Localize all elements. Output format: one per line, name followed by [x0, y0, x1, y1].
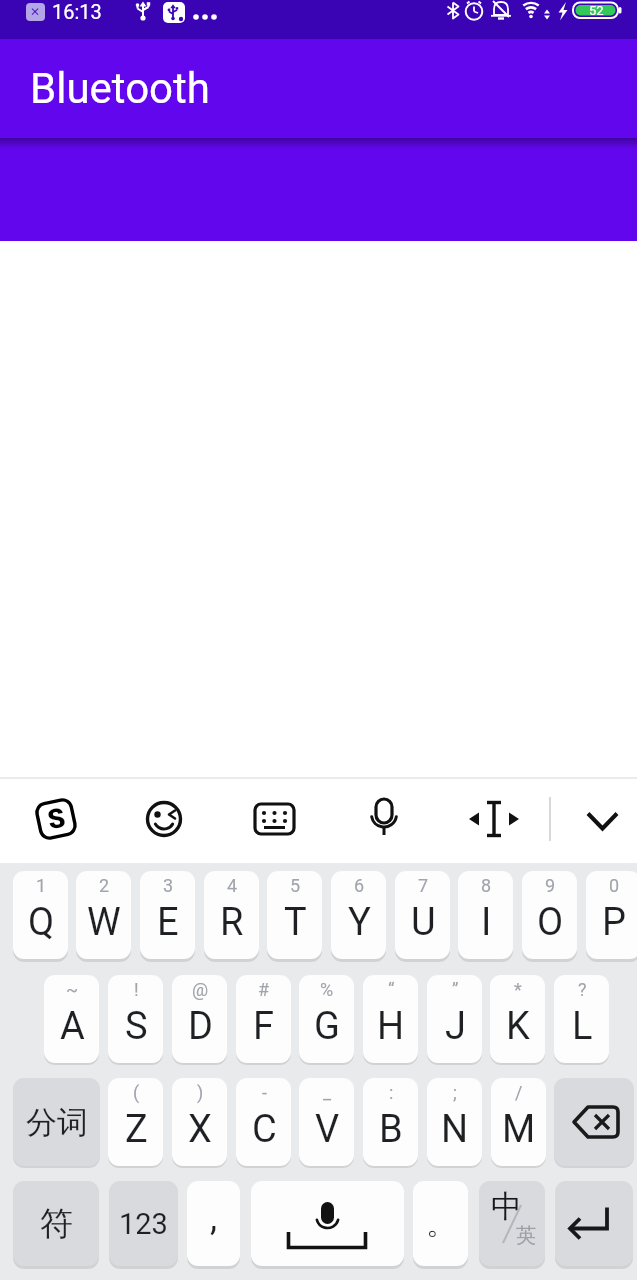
button[interactable]: “: [363, 975, 418, 1063]
staticText: U: [411, 900, 436, 944]
button[interactable]: :: [363, 1078, 418, 1166]
button[interactable]: [251, 1181, 404, 1266]
staticText: “: [388, 979, 395, 1000]
button[interactable]: 5: [267, 871, 322, 959]
button[interactable]: [554, 1078, 634, 1166]
button[interactable]: *: [490, 975, 545, 1063]
button[interactable]: [362, 795, 406, 841]
staticText: Bluetooth: [30, 64, 210, 113]
staticText: !: [134, 979, 139, 1000]
staticText: 6: [354, 875, 365, 896]
button[interactable]: 符: [13, 1181, 99, 1266]
button[interactable]: 7: [395, 871, 450, 959]
staticText: E: [157, 900, 179, 944]
button[interactable]: 123: [109, 1181, 178, 1266]
button[interactable]: 3: [140, 871, 195, 959]
staticText: X: [188, 1107, 212, 1151]
button[interactable]: %: [299, 975, 354, 1063]
staticText: 符: [40, 1203, 73, 1245]
button[interactable]: 1: [13, 871, 68, 959]
button[interactable]: 6: [331, 871, 386, 959]
staticText: (: [133, 1082, 140, 1103]
staticText: 2: [99, 875, 110, 896]
staticText: N: [441, 1107, 469, 1151]
staticText: 8: [481, 875, 492, 896]
staticText: 4: [227, 875, 238, 896]
staticText: J: [445, 1004, 466, 1048]
staticText: 5: [290, 875, 301, 896]
staticText: T: [284, 900, 307, 944]
staticText: C: [252, 1107, 277, 1151]
staticText: 52: [589, 3, 604, 18]
button[interactable]: ?: [554, 975, 609, 1063]
button[interactable]: [555, 1181, 633, 1266]
staticText: W: [87, 900, 121, 944]
staticText: ✕: [30, 5, 41, 19]
staticText: O: [537, 900, 564, 944]
staticText: %: [320, 979, 334, 1000]
staticText: S: [125, 1004, 148, 1048]
button[interactable]: ): [172, 1078, 227, 1166]
staticText: 7: [418, 875, 429, 896]
staticText: ”: [452, 979, 459, 1000]
staticText: 分词: [26, 1103, 88, 1142]
staticText: ~: [66, 979, 79, 1000]
staticText: 。: [426, 1205, 456, 1243]
button[interactable]: 0: [586, 871, 637, 959]
staticText: S: [45, 801, 68, 836]
staticText: 中: [491, 1187, 522, 1226]
button[interactable]: /: [491, 1078, 546, 1166]
staticText: 1: [36, 875, 47, 896]
button[interactable]: -: [236, 1078, 291, 1166]
staticText: K: [506, 1004, 530, 1048]
staticText: A: [60, 1004, 85, 1048]
staticText: P: [602, 900, 626, 944]
staticText: G: [314, 1004, 340, 1048]
staticText: V: [315, 1107, 340, 1151]
staticText: ?: [578, 979, 587, 1000]
staticText: _: [323, 1082, 332, 1103]
button[interactable]: #: [236, 975, 291, 1063]
staticText: #: [258, 979, 270, 1000]
staticText: Q: [28, 900, 55, 944]
button[interactable]: [142, 797, 186, 841]
button[interactable]: ”: [427, 975, 482, 1063]
staticText: R: [220, 900, 244, 944]
staticText: :: [389, 1082, 394, 1103]
button[interactable]: 9: [522, 871, 577, 959]
staticText: 英: [516, 1223, 536, 1248]
staticText: L: [572, 1004, 593, 1048]
staticText: ;: [453, 1082, 457, 1103]
staticText: Z: [125, 1107, 148, 1151]
staticText: @: [192, 979, 209, 1000]
button[interactable]: _: [299, 1078, 354, 1166]
button[interactable]: ;: [427, 1078, 482, 1166]
staticText: 123: [119, 1207, 168, 1241]
staticText: 0: [609, 875, 620, 896]
button[interactable]: S: [33, 796, 79, 842]
button[interactable]: 分词: [13, 1078, 100, 1166]
staticText: I: [481, 900, 492, 944]
button[interactable]: [578, 799, 626, 839]
staticText: -: [262, 1082, 267, 1103]
button[interactable]: !: [108, 975, 163, 1063]
button[interactable]: ,: [187, 1181, 240, 1266]
button[interactable]: ~: [44, 975, 99, 1063]
staticText: M: [502, 1107, 536, 1151]
staticText: ,: [210, 1197, 218, 1239]
button[interactable]: @: [172, 975, 227, 1063]
staticText: H: [377, 1004, 405, 1048]
button[interactable]: 2: [76, 871, 131, 959]
staticText: /: [515, 1082, 523, 1103]
button[interactable]: [465, 797, 523, 841]
button[interactable]: 中: [479, 1181, 545, 1266]
button[interactable]: 8: [458, 871, 513, 959]
button[interactable]: [251, 798, 297, 840]
staticText: 9: [545, 875, 556, 896]
staticText: Y: [348, 900, 371, 944]
button[interactable]: 4: [204, 871, 259, 959]
button[interactable]: 。: [413, 1181, 468, 1266]
staticText: D: [188, 1004, 213, 1048]
staticText: F: [253, 1004, 275, 1048]
button[interactable]: (: [108, 1078, 163, 1166]
